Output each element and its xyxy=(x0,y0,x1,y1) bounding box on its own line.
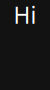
staticText: Hi xyxy=(13,0,36,30)
